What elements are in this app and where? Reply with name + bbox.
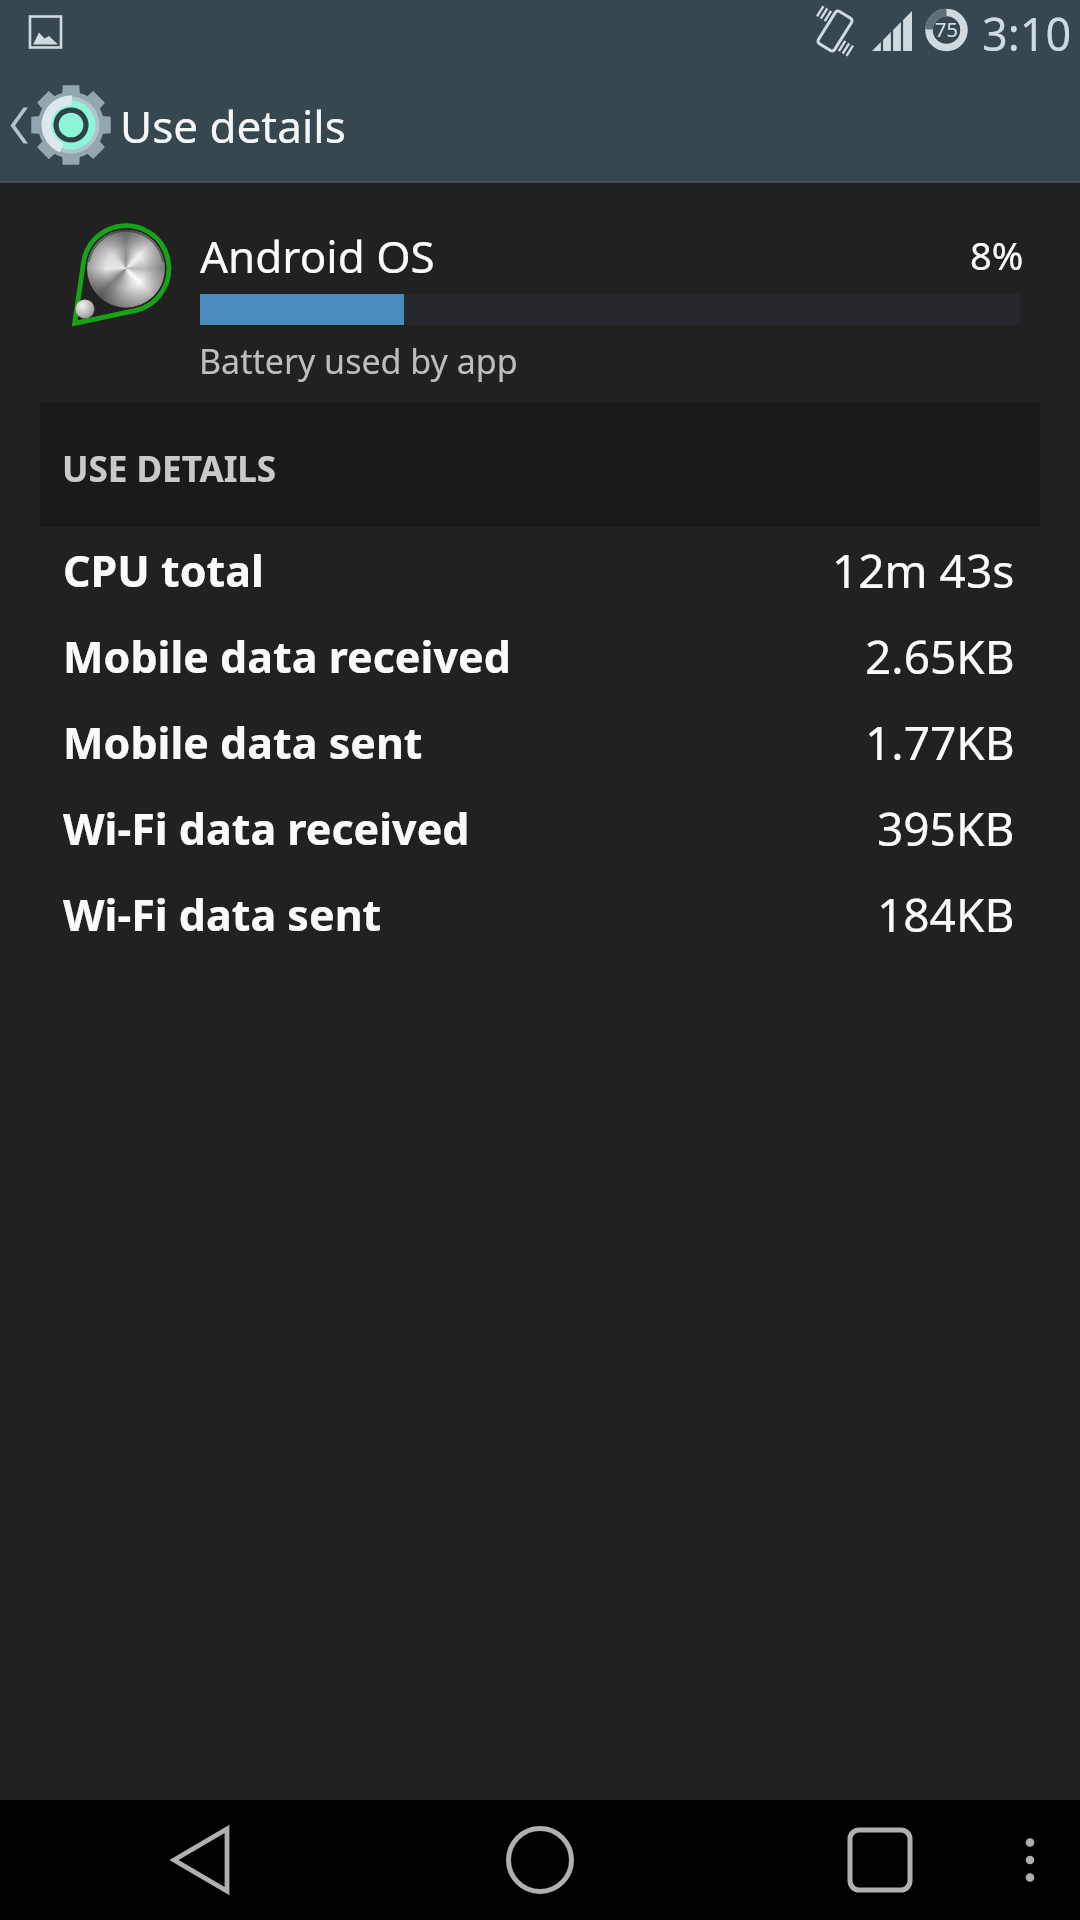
button[interactable]: Navigate up xyxy=(0,68,118,183)
button[interactable]: CPU total xyxy=(0,527,1080,613)
button[interactable]: Recent apps xyxy=(770,1800,990,1920)
staticText: Battery used by app xyxy=(199,338,518,384)
button[interactable]: Wi-Fi data received xyxy=(0,785,1080,871)
staticText: Mobile data received xyxy=(63,627,511,686)
staticText: 75 xyxy=(935,16,958,43)
button[interactable]: More options xyxy=(990,1800,1080,1920)
staticText: Wi-Fi data received xyxy=(63,799,470,858)
staticText: Android OS xyxy=(200,226,435,286)
button[interactable]: Mobile data received xyxy=(0,613,1080,699)
button[interactable]: Back xyxy=(90,1800,310,1920)
staticText: 12m 43s xyxy=(832,539,1015,602)
staticText: 395KB xyxy=(877,797,1015,860)
staticText: Use details xyxy=(120,96,346,156)
button[interactable]: Wi-Fi data sent xyxy=(0,871,1080,957)
staticText: 184KB xyxy=(877,883,1015,946)
button[interactable]: Mobile data sent xyxy=(0,699,1080,785)
staticText: Mobile data sent xyxy=(63,713,423,772)
staticText: CPU total xyxy=(63,541,264,600)
staticText: 2.65KB xyxy=(865,625,1015,688)
staticText: 3:10 xyxy=(982,3,1072,64)
staticText: 1.77KB xyxy=(865,711,1015,774)
button[interactable]: Home xyxy=(430,1800,650,1920)
staticText: Wi-Fi data sent xyxy=(63,885,382,944)
staticText: 8% xyxy=(970,229,1024,281)
staticText: USE DETAILS xyxy=(62,445,277,493)
